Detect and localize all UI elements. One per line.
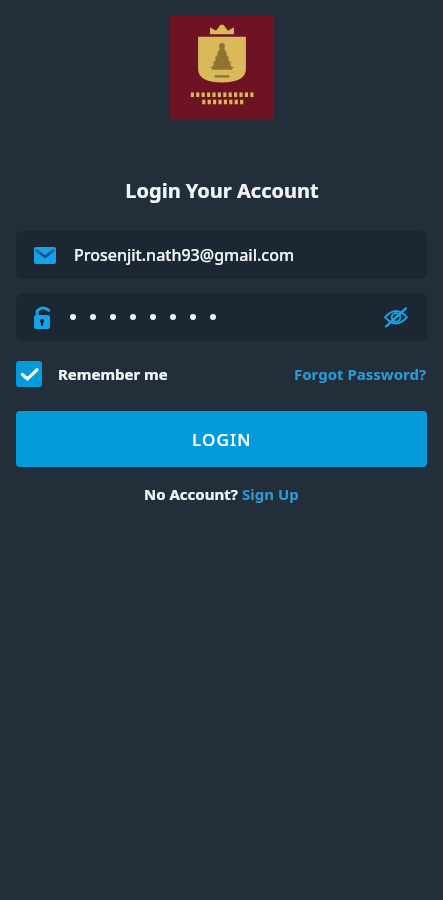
staticText: Prosenjit.nath93@gmail.com [74,244,295,266]
button[interactable]: Show password [16,293,427,341]
button[interactable]: Sign Up [242,484,299,504]
staticText: Forgot Password? [294,364,427,384]
button[interactable]: Prosenjit.nath93@gmail.com [16,231,427,279]
button[interactable]: LOGIN [16,411,427,467]
button[interactable]: Show password [379,300,413,334]
button[interactable]: Forgot Password? [294,364,427,384]
staticText: Login Your Account [125,177,319,204]
staticText: Remember me [58,364,168,384]
staticText: Sign Up [242,484,299,504]
staticText: LOGIN [192,428,252,451]
staticText: No Account? [144,484,242,504]
button[interactable]: Remember me [16,361,174,387]
